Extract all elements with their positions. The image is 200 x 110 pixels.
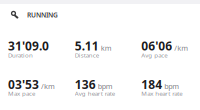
- staticText: 03'53: [8, 76, 39, 92]
- staticText: /km: [41, 81, 55, 91]
- staticText: /km: [174, 43, 188, 53]
- staticText: 5.11: [75, 38, 99, 54]
- staticText: 184: [141, 76, 162, 92]
- staticText: km: [101, 43, 112, 53]
- staticText: bpm: [164, 81, 179, 91]
- staticText: bpm: [98, 81, 113, 91]
- staticText: Distance: [75, 51, 99, 59]
- staticText: Avg heart rate: [75, 89, 115, 98]
- staticText: RUNNING: [27, 10, 58, 20]
- staticText: 31'09.0: [8, 38, 49, 54]
- staticText: Duration: [8, 51, 33, 59]
- staticText: Max heart rate: [141, 89, 182, 98]
- staticText: 06'06: [141, 38, 172, 54]
- staticText: Avg pace: [141, 51, 167, 59]
- staticText: Max pace: [8, 89, 35, 98]
- staticText: 136: [75, 76, 96, 92]
